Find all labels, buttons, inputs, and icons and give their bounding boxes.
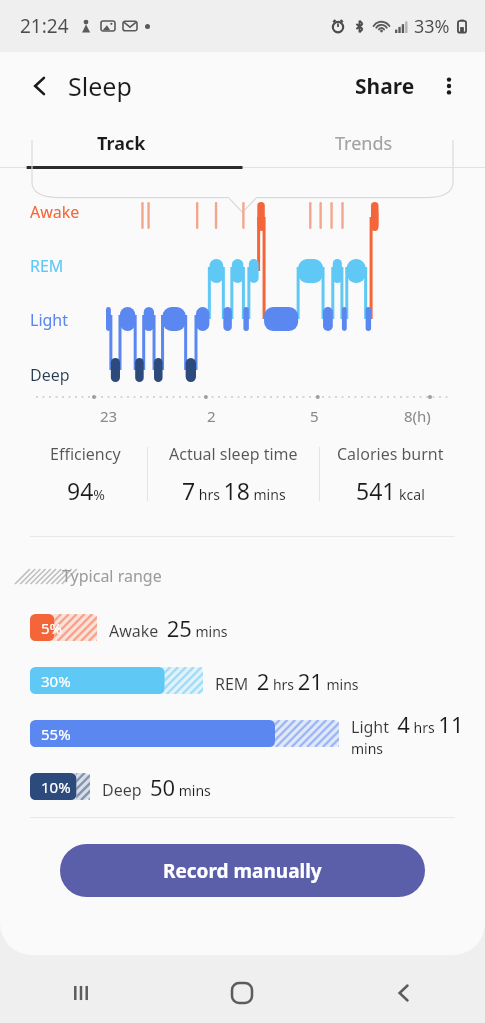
staticText: 5% [41,618,63,638]
button[interactable]: Calories burnt [320,426,461,522]
button[interactable]: More options [431,68,467,104]
button[interactable]: Trends [242,120,485,166]
button[interactable]: 10% [0,760,485,813]
button[interactable]: Efficiency [24,426,147,522]
staticText: Light 4 hrs 11 mins [351,709,471,758]
staticText: 7 hrs 18 mins [182,475,286,506]
staticText: Sleep [68,69,132,103]
staticText: REM 2 hrs 21 mins [215,666,359,696]
staticText: 23 [100,406,118,426]
button[interactable]: Track [0,120,242,166]
staticText: 21:24 [20,13,69,39]
staticText: Typical range [62,565,162,587]
staticText: Actual sleep time [169,443,298,465]
staticText: 8(h) [404,406,431,426]
staticText: 33% [414,14,450,39]
staticText: 94% [67,475,105,506]
button[interactable]: 55% [0,707,485,760]
staticText: Deep [30,364,70,386]
button[interactable]: Share [347,64,423,109]
button[interactable]: Home [161,963,323,1023]
button[interactable]: Back [22,68,58,104]
button[interactable]: Actual sleep time [148,426,319,522]
staticText: Trends [335,131,393,156]
staticText: Efficiency [50,443,121,465]
staticText: Calories burnt [337,443,444,465]
button[interactable]: Recent apps [0,963,161,1023]
staticText: 10% [41,777,71,797]
button[interactable]: Record manually [60,844,425,897]
staticText: Share [355,72,415,101]
staticText: 55% [41,724,71,744]
staticText: Deep 50 mins [102,772,211,802]
staticText: Track [97,131,146,156]
staticText: Record manually [163,858,322,884]
button[interactable]: 30% [0,654,485,707]
staticText: 5 [310,406,319,426]
staticText: Awake 25 mins [109,613,228,643]
staticText: 541 kcal [356,475,425,506]
staticText: Light [30,309,69,331]
staticText: REM [30,255,64,277]
staticText: 30% [41,671,71,691]
staticText: 2 [207,406,216,426]
button[interactable]: Back [323,963,485,1023]
staticText: Awake [30,201,80,223]
button[interactable]: 5% [0,601,485,654]
